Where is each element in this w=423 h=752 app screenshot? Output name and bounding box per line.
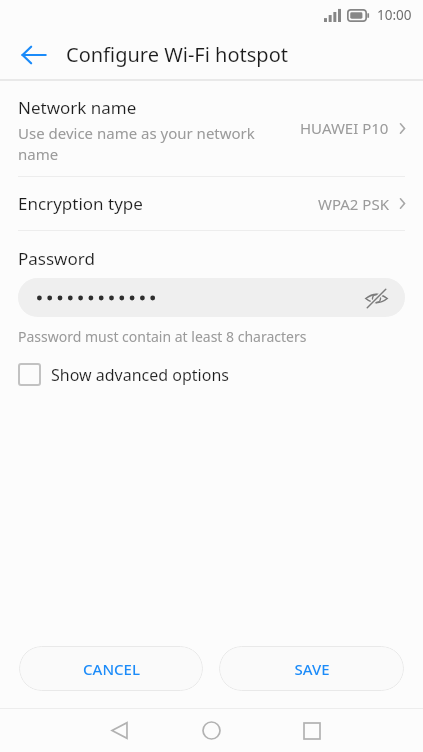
staticText: Show advanced options	[51, 364, 229, 386]
button[interactable]: Show password	[358, 280, 394, 316]
staticText: CANCEL	[83, 659, 140, 679]
staticText: Network name	[18, 96, 137, 119]
button[interactable]: SAVE	[219, 646, 404, 691]
button[interactable]: CANCEL	[19, 646, 203, 691]
staticText: WPA2 PSK	[318, 194, 389, 214]
staticText: Encryption type	[18, 192, 318, 215]
staticText: SAVE	[294, 659, 330, 679]
button[interactable]: Back	[11, 32, 56, 77]
button[interactable]: Encryption type	[0, 177, 423, 230]
staticText: Configure Wi-Fi hotspot	[66, 41, 288, 68]
staticText: Use device name as your network name	[18, 123, 288, 165]
staticText: Password	[18, 247, 95, 270]
button[interactable]: Recents	[290, 709, 333, 752]
button[interactable]: Network name	[0, 81, 423, 176]
button[interactable]: Back	[98, 709, 141, 752]
button[interactable]: Home	[190, 709, 233, 752]
button[interactable]: Show password	[18, 278, 405, 317]
staticText: 10:00	[377, 6, 412, 24]
staticText: HUAWEI P10	[300, 118, 389, 138]
button[interactable]: Show advanced options	[18, 361, 229, 388]
staticText: Password must contain at least 8 charact…	[18, 327, 307, 346]
